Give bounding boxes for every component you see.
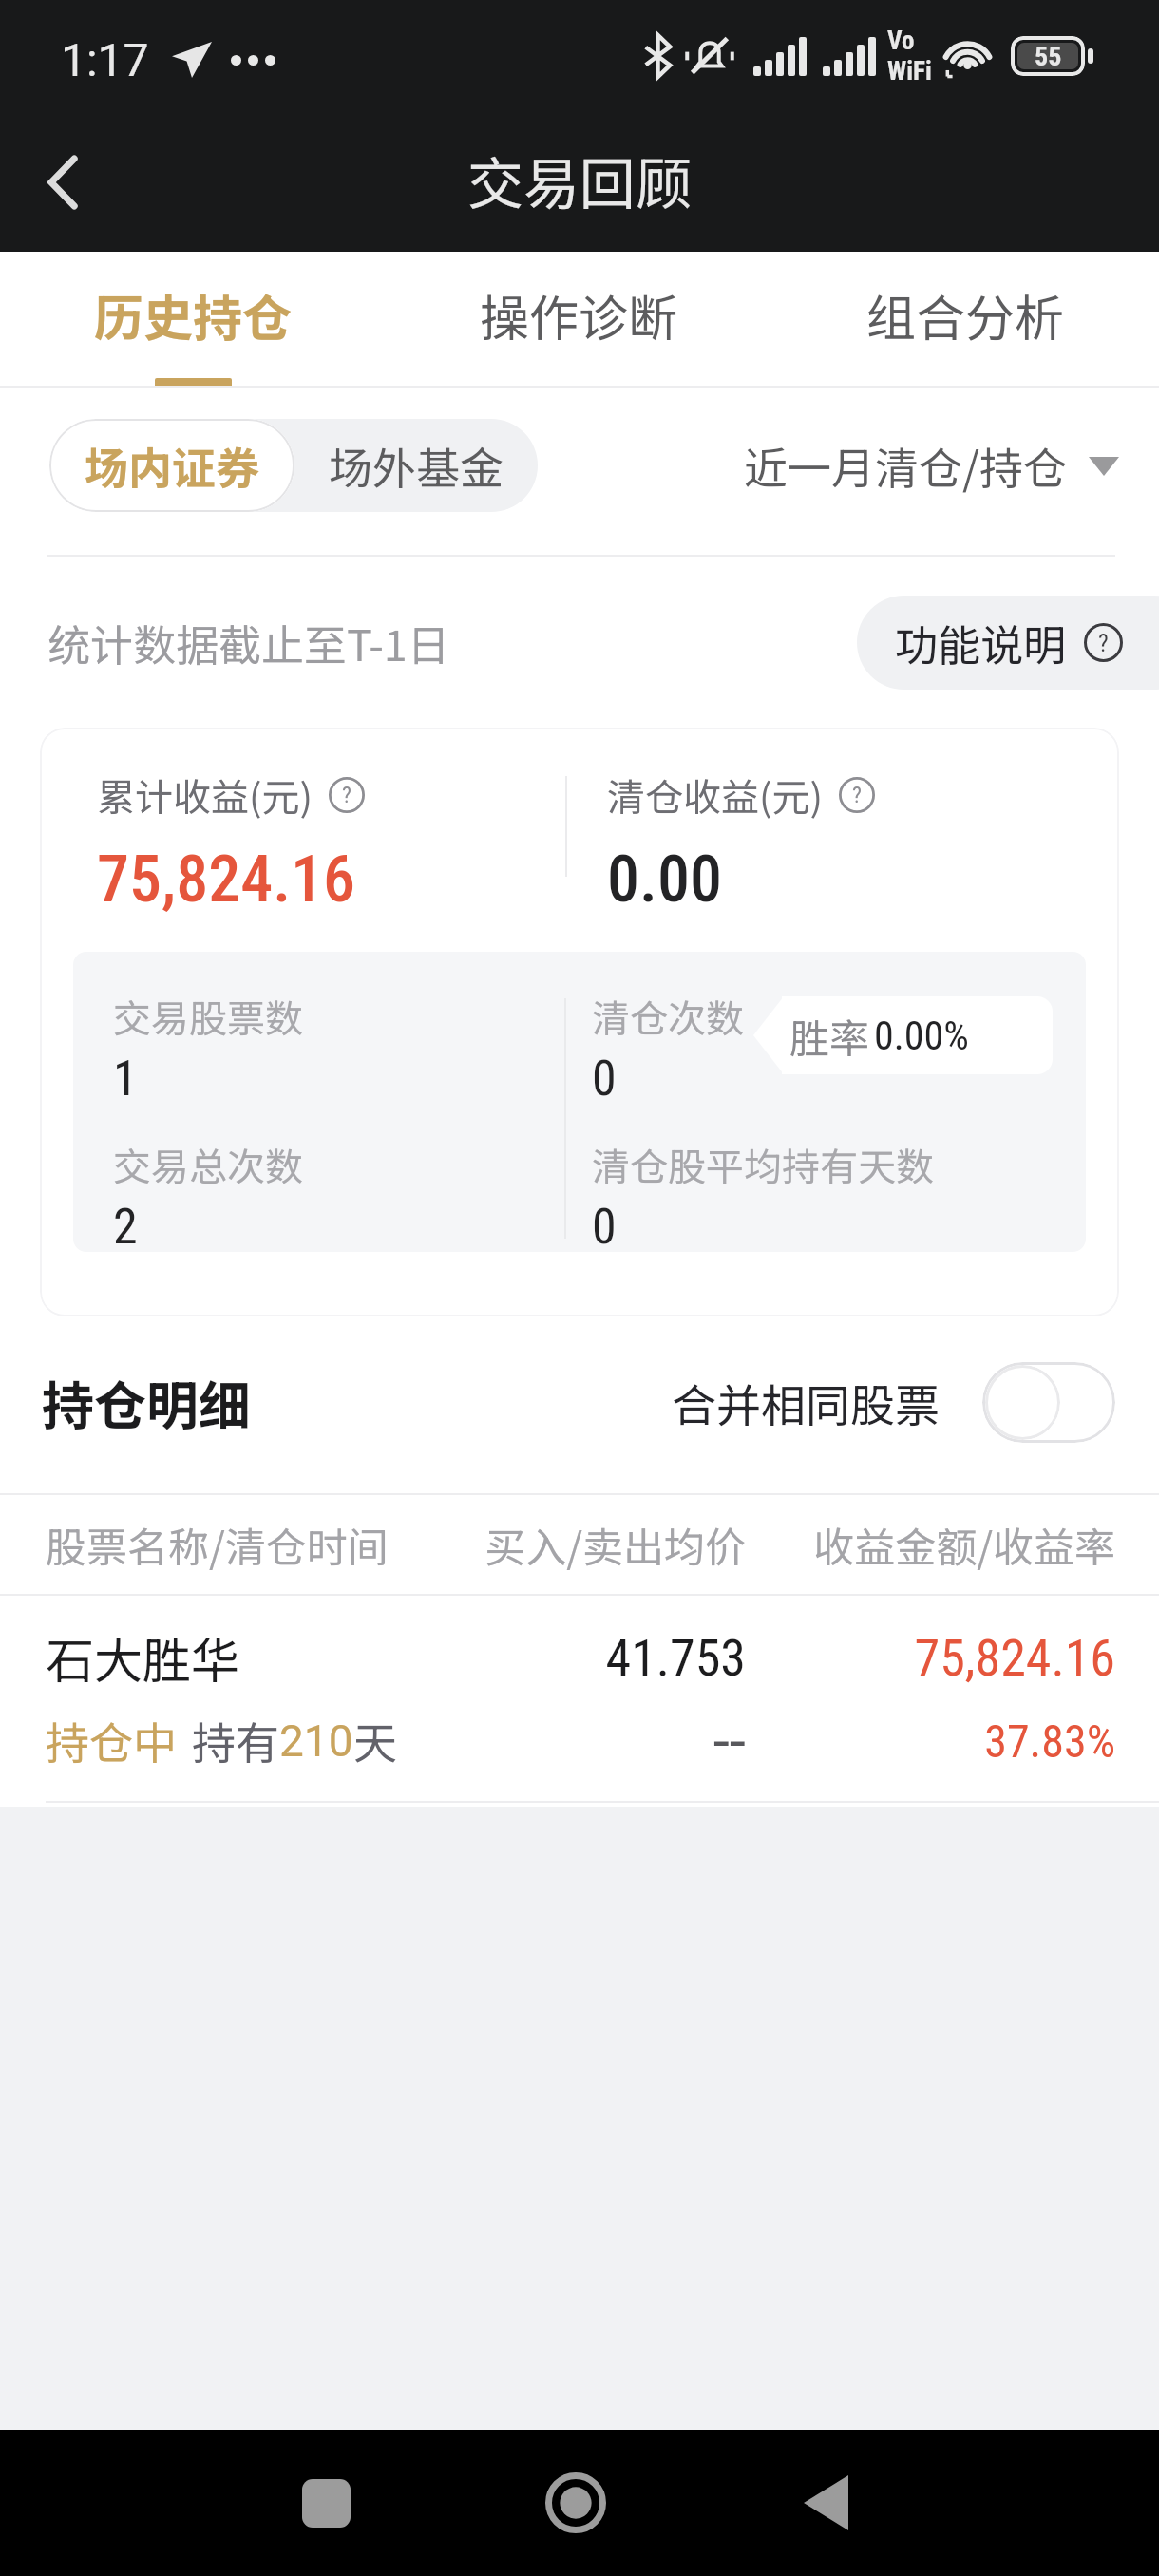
staticText: 收益金额/收益率 — [746, 1515, 1115, 1574]
button[interactable]: 功能说明 — [857, 596, 1159, 690]
staticText: 场外基金 — [329, 434, 503, 498]
button[interactable]: Recents — [264, 2441, 388, 2565]
button[interactable]: 组合分析 — [772, 252, 1159, 388]
staticText: 股票名称/清仓时间 — [46, 1515, 460, 1574]
staticText: 55 — [1035, 41, 1062, 72]
staticText: 1:17 — [61, 33, 149, 86]
button[interactable]: Home — [514, 2441, 637, 2565]
button[interactable]: 历史持仓 — [0, 252, 386, 388]
staticText: 0 — [592, 1050, 617, 1108]
staticText: 37.83% — [746, 1714, 1115, 1768]
staticText: 持有 — [192, 1709, 279, 1772]
button[interactable]: 场内证券 — [49, 419, 294, 512]
staticText: Vo — [887, 26, 915, 56]
staticText: -- — [460, 1706, 746, 1775]
staticText: ? — [1098, 629, 1109, 657]
staticText: 操作诊断 — [480, 279, 678, 350]
staticText: 2 — [113, 1198, 138, 1252]
staticText: 0.00% — [874, 1013, 969, 1059]
staticText: 统计数据截止至T-1日 — [47, 612, 450, 673]
staticText: ? — [852, 782, 862, 808]
staticText: 41.753 — [460, 1628, 746, 1688]
staticText: 75,824.16 — [746, 1628, 1115, 1688]
staticText: 累计收益(元) — [97, 767, 313, 823]
button[interactable]: Merge same stocks — [982, 1362, 1115, 1443]
staticText: WiFi — [887, 56, 932, 86]
button[interactable]: Back — [764, 2441, 887, 2565]
staticText: 近一月清仓/持仓 — [744, 434, 1068, 498]
staticText: 胜率 — [789, 1007, 870, 1065]
staticText: 合并相同股票 — [672, 1370, 940, 1434]
button[interactable]: 操作诊断 — [386, 252, 772, 388]
staticText: 组合分析 — [866, 279, 1065, 350]
button[interactable]: 石大胜华 — [0, 1596, 1159, 1807]
staticText: 清仓股平均持有天数 — [592, 1137, 934, 1192]
staticText: 75,824.16 — [97, 842, 356, 918]
staticText: 场内证券 — [85, 434, 259, 498]
staticText: 交易总次数 — [113, 1137, 303, 1192]
staticText: 天 — [353, 1709, 397, 1772]
staticText: 清仓收益(元) — [607, 767, 824, 823]
button[interactable]: Back — [21, 139, 108, 226]
staticText: 交易股票数 — [113, 989, 303, 1044]
staticText: 持仓中 — [46, 1709, 177, 1772]
staticText: ? — [342, 782, 351, 808]
staticText: 0 — [592, 1198, 617, 1252]
staticText: 清仓次数 — [592, 989, 744, 1044]
staticText: 功能说明 — [895, 612, 1067, 673]
staticText: 0.00 — [607, 842, 722, 918]
staticText: 石大胜华 — [46, 1622, 460, 1693]
staticText: 持仓明细 — [42, 1364, 252, 1440]
staticText: 买入/卖出均价 — [460, 1515, 746, 1574]
staticText: 历史持仓 — [94, 279, 293, 350]
staticText: 210 — [279, 1715, 353, 1767]
button[interactable]: 近一月清仓/持仓 — [744, 434, 1119, 498]
staticText: 交易回顾 — [467, 140, 693, 220]
button[interactable]: 场外基金 — [294, 419, 538, 512]
staticText: 1 — [113, 1050, 138, 1108]
